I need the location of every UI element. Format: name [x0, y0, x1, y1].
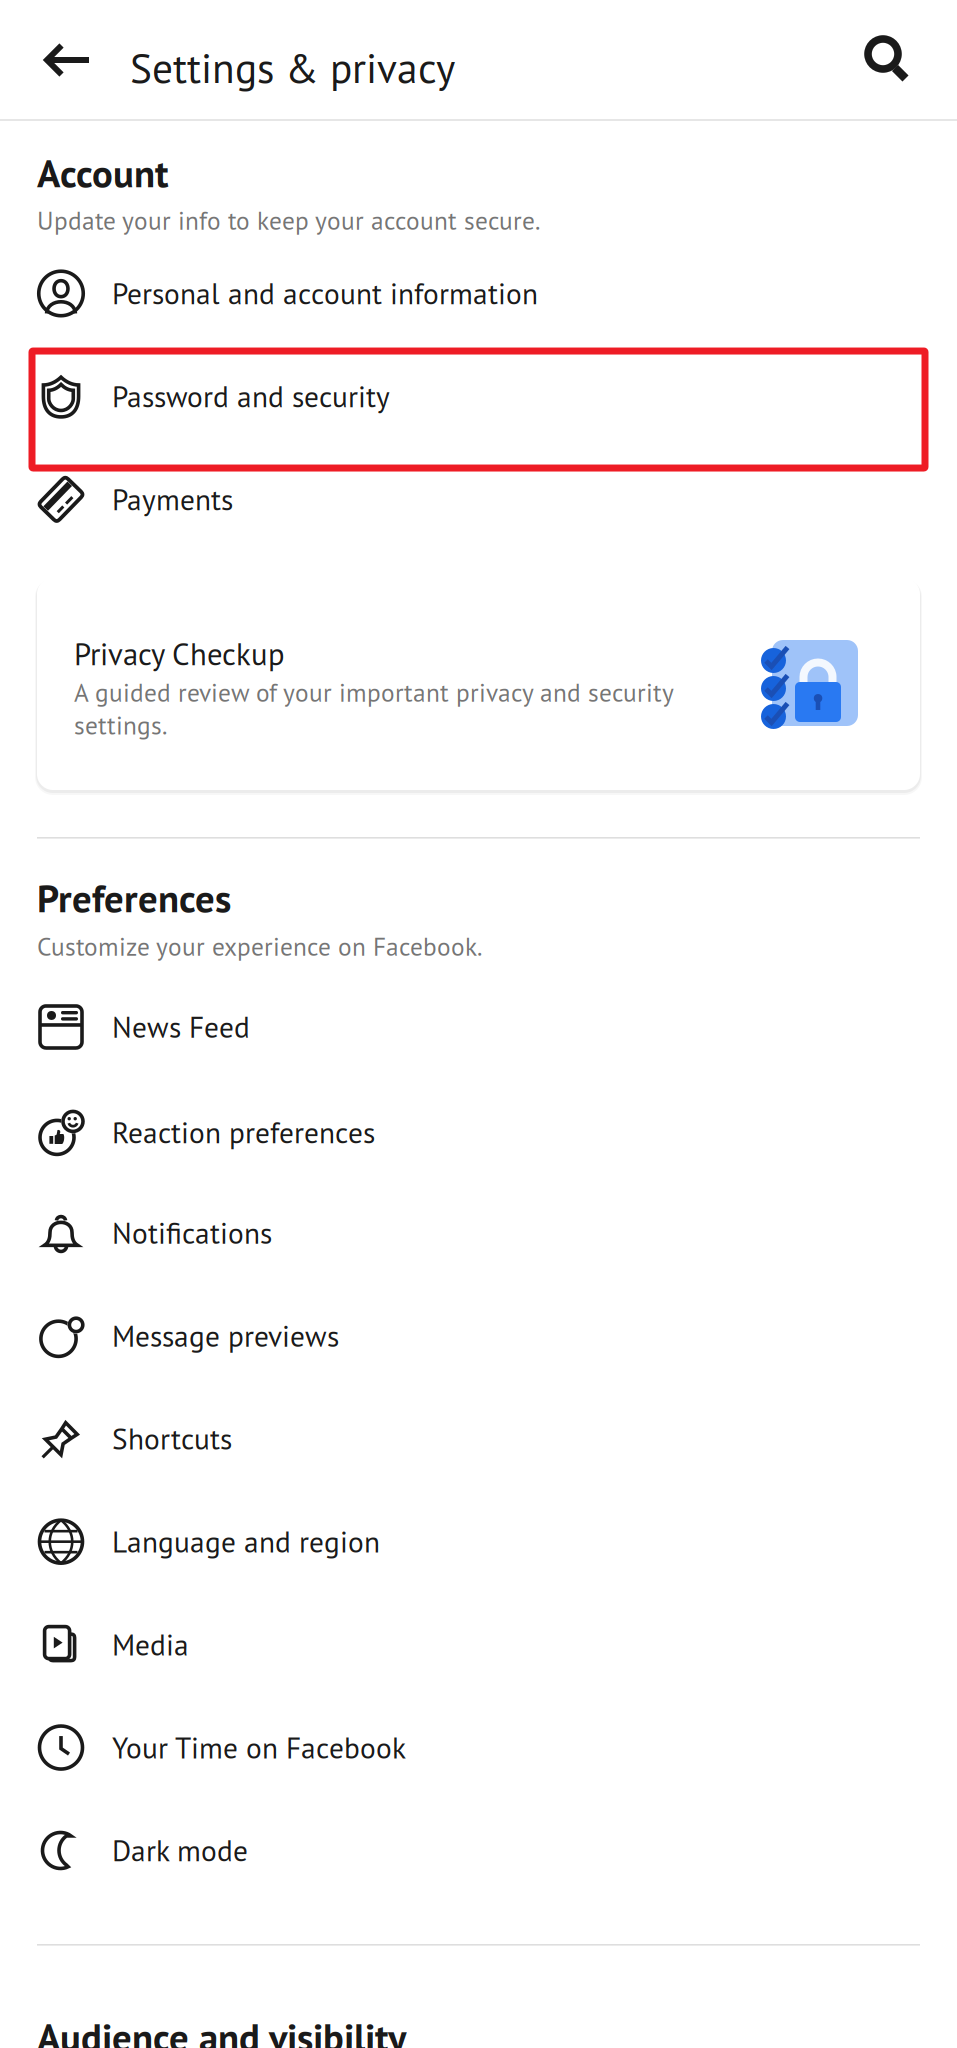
staticText: Update your info to keep your account se… — [37, 204, 540, 237]
staticText: Message previews — [112, 1317, 339, 1355]
button[interactable]: Your Time on Facebook — [0, 1696, 957, 1799]
button[interactable]: Privacy Checkup — [37, 578, 920, 790]
staticText: Notifications — [112, 1214, 272, 1252]
staticText: Privacy Checkup — [74, 634, 285, 674]
staticText: News Feed — [112, 1008, 250, 1046]
staticText: Customize your experience on Facebook. — [37, 930, 482, 963]
button[interactable]: Media — [0, 1593, 957, 1696]
staticText: Preferences — [37, 873, 231, 923]
button[interactable]: Message previews — [0, 1284, 957, 1387]
button[interactable]: Payments — [0, 448, 957, 551]
staticText: Settings & privacy — [130, 41, 455, 94]
staticText: Dark mode — [112, 1831, 248, 1869]
button[interactable]: Shortcuts — [0, 1387, 957, 1490]
staticText: Reaction preferences — [112, 1113, 375, 1151]
staticText: Language and region — [112, 1523, 380, 1561]
button[interactable]: Back — [22, 1, 114, 119]
button[interactable]: Personal and account information — [0, 242, 957, 345]
staticText: Payments — [112, 480, 233, 518]
button[interactable]: Password and security — [0, 345, 957, 448]
staticText: Password and security — [112, 377, 390, 415]
button[interactable]: Notifications — [0, 1181, 957, 1284]
staticText: A guided review of your important privac… — [74, 676, 673, 742]
button[interactable]: Language and region — [0, 1490, 957, 1593]
button[interactable]: Search — [839, 1, 935, 119]
staticText: Audience and visibility — [37, 2012, 406, 2048]
staticText: Account — [37, 148, 168, 198]
staticText: Your Time on Facebook — [112, 1729, 406, 1767]
staticText: Personal and account information — [112, 274, 538, 312]
button[interactable]: Dark mode — [0, 1799, 957, 1902]
button[interactable]: News Feed — [0, 975, 957, 1078]
button[interactable]: Reaction preferences — [0, 1081, 957, 1184]
staticText: Media — [112, 1626, 189, 1664]
staticText: Shortcuts — [112, 1420, 232, 1458]
